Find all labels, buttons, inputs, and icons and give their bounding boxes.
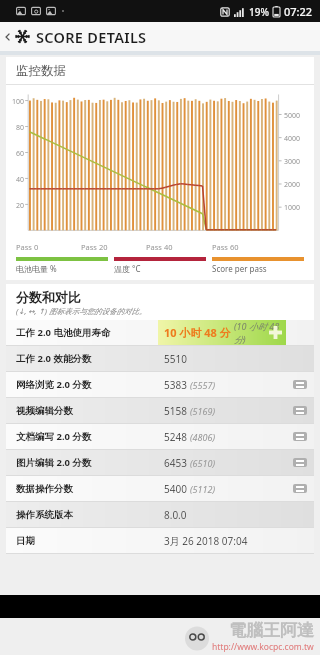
staticText: 图片编辑 2.0 分数 bbox=[16, 456, 92, 469]
button[interactable]: 文档编写 2.0 分数 bbox=[6, 424, 314, 449]
staticText: 工作 2.0 电池使用寿命 bbox=[16, 326, 111, 339]
staticText: (↓, ↔, ↑) 图标表示与您的设备的对比。 bbox=[16, 306, 147, 316]
other: Equal bbox=[293, 380, 307, 389]
staticText: 1000 bbox=[284, 203, 314, 213]
button[interactable]: 电池电量 % bbox=[16, 257, 108, 274]
staticText: 8.0.0 bbox=[164, 508, 187, 522]
staticText: 60 bbox=[6, 149, 24, 159]
staticText: 4000 bbox=[284, 134, 314, 144]
button[interactable]: 网络浏览 2.0 分数 bbox=[6, 372, 314, 397]
staticText: (5169) bbox=[190, 405, 216, 417]
staticText: 80 bbox=[6, 123, 24, 133]
staticText: 分数和对比 bbox=[16, 289, 81, 305]
button[interactable]: 工作 2.0 效能分数 bbox=[6, 346, 314, 371]
button[interactable]: 图片编辑 2.0 分数 bbox=[6, 450, 314, 475]
button[interactable]: 数据操作分数 bbox=[6, 476, 314, 501]
staticText: 07:22 bbox=[284, 4, 313, 19]
staticText: 20 bbox=[6, 201, 24, 211]
staticText: 操作系统版本 bbox=[16, 509, 73, 521]
staticText: 電腦王阿達 bbox=[229, 620, 314, 641]
staticText: 监控数据 bbox=[16, 63, 66, 79]
staticText: (5112) bbox=[190, 483, 216, 495]
staticText: 温度 °C bbox=[114, 263, 141, 274]
staticText: 5383 bbox=[164, 378, 187, 392]
button[interactable]: 温度 °C bbox=[114, 257, 206, 274]
staticText: (5557) bbox=[190, 379, 216, 391]
staticText: (10 小时 48 分) bbox=[234, 320, 286, 345]
staticText: Pass 20 bbox=[81, 242, 108, 252]
staticText: 2000 bbox=[284, 180, 314, 190]
staticText: 5510 bbox=[164, 352, 187, 366]
staticText: SCORE DETAILS bbox=[36, 27, 147, 47]
button[interactable]: 工作 2.0 电池使用寿命 bbox=[6, 320, 314, 345]
staticText: 网络浏览 2.0 分数 bbox=[16, 378, 92, 391]
staticText: 3月 26 2018 07:04 bbox=[164, 534, 248, 548]
button[interactable]: Back bbox=[0, 22, 320, 51]
staticText: 40 bbox=[6, 175, 24, 185]
button[interactable]: 视频编辑分数 bbox=[6, 398, 314, 423]
staticText: (6510) bbox=[190, 457, 216, 469]
other: Better bbox=[269, 326, 282, 339]
button[interactable]: 操作系统版本 bbox=[6, 502, 314, 527]
staticText: 日期 bbox=[16, 535, 35, 547]
staticText: 工作 2.0 效能分数 bbox=[16, 352, 92, 365]
staticText: 数据操作分数 bbox=[16, 483, 73, 495]
staticText: 5158 bbox=[164, 404, 187, 418]
staticText: 100 bbox=[6, 97, 24, 107]
staticText: Pass 40 bbox=[146, 242, 173, 252]
staticText: 5248 bbox=[164, 430, 187, 444]
other: Back bbox=[2, 31, 14, 43]
button[interactable]: 日期 bbox=[6, 528, 314, 553]
staticText: (4806) bbox=[190, 431, 216, 443]
staticText: 视频编辑分数 bbox=[16, 405, 73, 417]
staticText: http://www.kocpc.com.tw bbox=[212, 641, 314, 653]
staticText: 6453 bbox=[164, 456, 187, 470]
other: Equal bbox=[293, 484, 307, 493]
staticText: 文档编写 2.0 分数 bbox=[16, 430, 92, 443]
staticText: Pass 0 bbox=[16, 242, 39, 252]
other: Equal bbox=[293, 458, 307, 467]
staticText: 3000 bbox=[284, 157, 314, 167]
other: Equal bbox=[293, 432, 307, 441]
staticText: 5000 bbox=[284, 111, 314, 121]
other: Equal bbox=[293, 406, 307, 415]
staticText: 电池电量 % bbox=[16, 263, 57, 274]
staticText: 10 小时 48 分 bbox=[164, 325, 231, 340]
staticText: 19% bbox=[249, 5, 269, 19]
button[interactable]: Score per pass bbox=[212, 257, 304, 274]
staticText: Score per pass bbox=[212, 263, 267, 274]
staticText: Pass 60 bbox=[212, 242, 239, 252]
staticText: 5400 bbox=[164, 482, 187, 496]
